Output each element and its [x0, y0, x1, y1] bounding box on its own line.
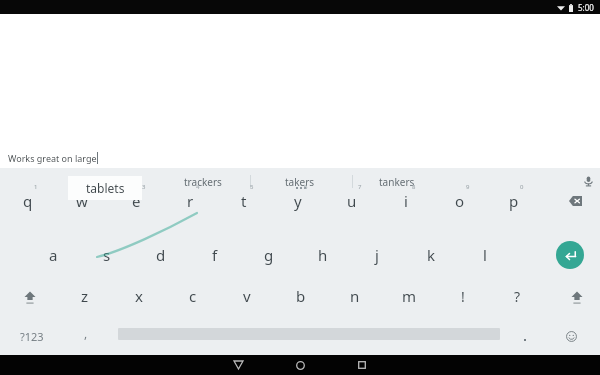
staticText: v [243, 286, 251, 306]
staticText: c [189, 286, 197, 306]
button[interactable]: k [404, 236, 458, 274]
button[interactable]: ! [436, 277, 490, 315]
staticText: o [455, 191, 465, 211]
staticText: t [241, 191, 247, 211]
button[interactable]: n [328, 277, 382, 315]
button[interactable]: Recent apps [350, 355, 374, 375]
staticText: a [49, 245, 58, 265]
button[interactable]: g [242, 236, 296, 274]
staticText: s [103, 245, 111, 265]
button[interactable] [505, 320, 545, 352]
button[interactable]: t [217, 182, 271, 220]
button[interactable]: tankers [353, 168, 441, 195]
button[interactable]: trackers [159, 168, 247, 195]
staticText: , [84, 325, 88, 341]
staticText: b [296, 286, 306, 306]
button[interactable]: d [134, 236, 188, 274]
button[interactable]: x [112, 277, 166, 315]
staticText: 5:00 [578, 2, 594, 13]
staticText: trackers [184, 175, 222, 189]
staticText: 0 [520, 183, 524, 191]
button[interactable]: Shift [9, 278, 51, 316]
button[interactable]: b [274, 277, 328, 315]
button[interactable]: s [80, 236, 134, 274]
staticText: r [187, 191, 194, 211]
staticText: j [375, 245, 379, 265]
staticText: 4 [196, 183, 200, 191]
staticText: z [81, 286, 89, 306]
button[interactable]: u [325, 182, 379, 220]
button[interactable]: v [220, 277, 274, 315]
button[interactable]: a [26, 236, 80, 274]
staticText: n [350, 286, 360, 306]
staticText: f [212, 245, 218, 265]
button[interactable]: Back [226, 355, 250, 375]
button[interactable]: Emoji [549, 320, 593, 352]
staticText: 7 [358, 183, 362, 191]
button[interactable]: ? [490, 277, 544, 315]
staticText: 2 [88, 183, 92, 191]
staticText: k [427, 245, 436, 265]
button[interactable]: Shift [556, 278, 598, 316]
staticText: takers [285, 175, 315, 189]
button[interactable]: i [379, 182, 433, 220]
staticText: m [402, 286, 417, 306]
staticText: 9 [466, 183, 470, 191]
staticText: e [132, 191, 141, 211]
staticText: 8 [412, 183, 416, 191]
button[interactable]: l [458, 236, 512, 274]
staticText: p [509, 191, 519, 211]
button[interactable]: tablets [68, 176, 142, 200]
button[interactable]: y [271, 182, 325, 220]
button[interactable]: o [433, 182, 487, 220]
staticText: 1 [34, 183, 38, 191]
staticText: ? [514, 287, 521, 306]
button[interactable]: Home [288, 355, 312, 375]
staticText: Works great on large [8, 152, 97, 164]
button[interactable]: m [382, 277, 436, 315]
button[interactable]: f [188, 236, 242, 274]
staticText: 3 [142, 183, 146, 191]
button[interactable]: j [350, 236, 404, 274]
staticText: 5 [250, 183, 254, 191]
button[interactable]: Backspace [553, 182, 597, 220]
staticText: d [156, 245, 166, 265]
button[interactable]: r [163, 182, 217, 220]
button[interactable]: Voice input [576, 168, 600, 195]
button[interactable]: , [64, 320, 108, 352]
staticText: tankers [379, 175, 415, 189]
button[interactable]: p [487, 182, 541, 220]
staticText: q [23, 191, 33, 211]
staticText: 6 [304, 183, 308, 191]
button[interactable]: takers [256, 168, 344, 195]
staticText: tablets [86, 180, 125, 196]
button[interactable]: z [58, 277, 112, 315]
button[interactable]: c [166, 277, 220, 315]
staticText: ! [461, 287, 465, 306]
staticText: g [264, 245, 274, 265]
staticText: y [294, 191, 302, 211]
button[interactable]: q [1, 182, 55, 220]
staticText: i [404, 191, 408, 211]
button[interactable]: e [109, 182, 163, 220]
button[interactable]: h [296, 236, 350, 274]
button[interactable]: w [55, 182, 109, 220]
staticText: l [483, 245, 487, 265]
staticText: h [318, 245, 328, 265]
button[interactable]: Enter [556, 241, 584, 269]
button[interactable]: ?123 [4, 320, 60, 352]
staticText: x [135, 286, 143, 306]
staticText: u [347, 191, 357, 211]
staticText: w [76, 191, 88, 211]
staticText: ?123 [20, 329, 44, 344]
